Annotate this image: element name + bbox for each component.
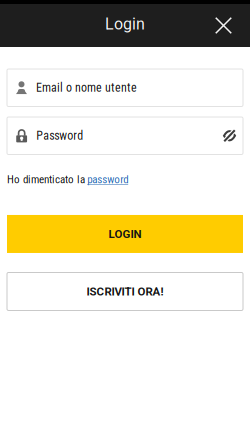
staticText: Login	[105, 15, 145, 33]
staticText: Email o nome utente	[36, 81, 137, 95]
button[interactable]: ISCRIVITI ORA!	[7, 272, 243, 310]
staticText: Ho dimenticato la	[7, 173, 85, 186]
button[interactable]: Show password	[218, 117, 240, 154]
staticText: ISCRIVITI ORA!	[86, 285, 163, 298]
staticText: Password	[36, 129, 83, 143]
button[interactable]: Email o nome utente	[7, 69, 243, 106]
staticText: LOGIN	[108, 227, 141, 241]
button[interactable]: password	[87, 173, 128, 186]
button[interactable]: LOGIN	[7, 215, 243, 253]
staticText: password	[87, 173, 128, 186]
button[interactable]: Close	[206, 4, 240, 47]
